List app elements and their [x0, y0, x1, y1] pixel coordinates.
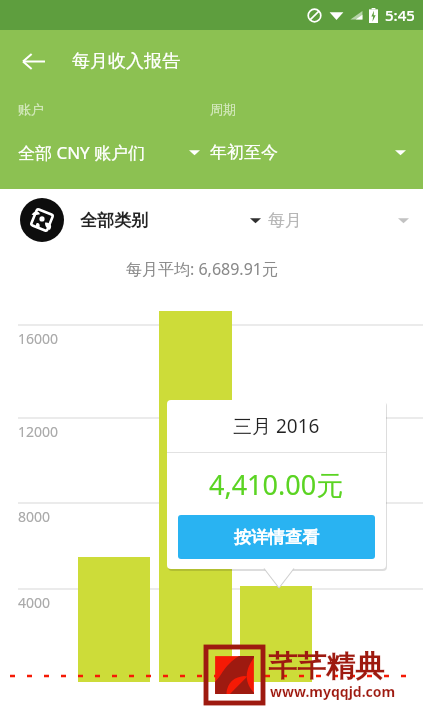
button[interactable]: 按详情查看 [178, 515, 375, 559]
button[interactable]: 年初至今 [204, 132, 412, 172]
staticText: 16000 [18, 329, 59, 348]
staticText: 年初至今 [210, 142, 278, 163]
staticText: 每月平均: 6,689.91元 [126, 258, 278, 280]
staticText: 每月收入报告 [72, 50, 180, 73]
staticText: 4,410.00元 [209, 466, 344, 503]
staticText: 周期 [210, 101, 236, 117]
staticText: 全部类别 [80, 210, 148, 231]
button[interactable]: 全部 CNY 账户们 [10, 132, 200, 172]
staticText: 按详情查看 [234, 527, 319, 548]
staticText: 12000 [18, 422, 59, 441]
button[interactable]: Back [10, 38, 56, 84]
button[interactable]: 每月 [250, 199, 415, 241]
staticText: 每月 [268, 210, 302, 231]
staticText: 8000 [18, 507, 51, 526]
staticText: www.myqqjd.com [270, 682, 396, 701]
staticText: 账户 [18, 101, 44, 117]
button[interactable]: 全部类别 [20, 195, 250, 245]
staticText: 三月 2016 [233, 413, 320, 439]
staticText: 芊芊精典 [268, 648, 384, 685]
staticText: 全部 CNY 账户们 [18, 141, 146, 164]
staticText: 4000 [18, 593, 51, 612]
staticText: 5:45 [385, 5, 415, 25]
